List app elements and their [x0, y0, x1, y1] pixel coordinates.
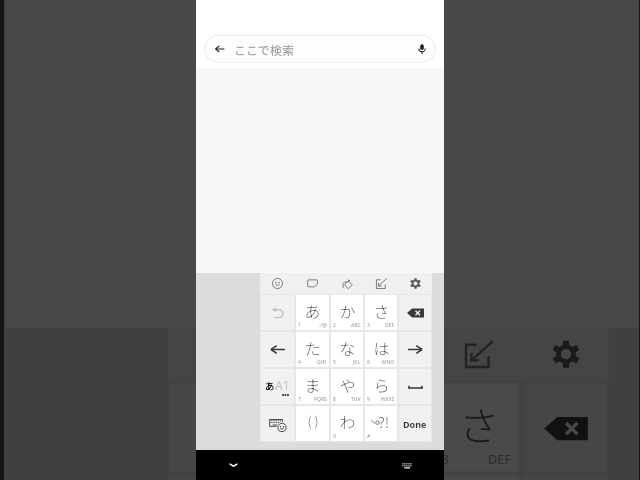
staticText: TUV	[351, 396, 361, 403]
staticText: A1	[275, 377, 290, 393]
staticText: な	[339, 336, 356, 359]
button[interactable]: ら	[365, 369, 397, 404]
staticText: 2	[333, 322, 336, 329]
button[interactable]: Hide keyboard	[196, 450, 270, 480]
staticText: JKL	[353, 359, 361, 366]
button[interactable]: Emoji keyboard	[261, 406, 294, 441]
button[interactable]: Themes	[347, 328, 434, 381]
button[interactable]: ( )	[296, 406, 329, 441]
staticText: 6	[367, 359, 370, 366]
staticText: ( )	[307, 411, 319, 430]
staticText: PQRS	[314, 396, 327, 403]
staticText: 1	[298, 322, 301, 329]
button[interactable]: や	[331, 369, 363, 404]
staticText: 3	[367, 322, 370, 329]
staticText: 3	[442, 451, 450, 469]
button[interactable]: は	[437, 476, 519, 480]
staticText: DEF	[385, 322, 395, 329]
button[interactable]: ?!	[365, 406, 397, 441]
button[interactable]: Move cursor left	[261, 332, 294, 367]
staticText: ABC	[351, 322, 361, 329]
staticText: ./@	[319, 322, 327, 329]
button[interactable]: は	[365, 332, 397, 367]
button[interactable]: さ	[365, 295, 397, 330]
button[interactable]: さ	[437, 383, 519, 471]
button[interactable]: あ	[296, 295, 329, 330]
button[interactable]: Done	[399, 406, 431, 441]
staticText: ま	[304, 373, 321, 396]
button[interactable]: Settings	[521, 328, 608, 381]
staticText: ABC	[401, 451, 426, 469]
button[interactable]: Switch input mode	[261, 369, 294, 404]
staticText: あ	[265, 379, 275, 393]
staticText: 8	[333, 396, 336, 403]
button[interactable]: Resize keyboard	[364, 273, 398, 294]
button[interactable]: Backspace	[524, 383, 606, 471]
staticText: か	[339, 299, 356, 322]
staticText: MNO	[382, 359, 395, 366]
button[interactable]: な	[331, 332, 363, 367]
button[interactable]: Emoji	[260, 273, 295, 294]
staticText: 9	[367, 396, 370, 403]
button[interactable]: ま	[296, 369, 329, 404]
button[interactable]: Resize keyboard	[434, 328, 521, 381]
button[interactable]: あ	[260, 383, 345, 471]
staticText: さ	[373, 299, 390, 322]
button[interactable]: ここで検索	[205, 36, 435, 62]
staticText: GHI	[317, 359, 327, 366]
staticText: は	[373, 336, 390, 359]
staticText: さ	[457, 393, 501, 451]
button[interactable]: Undo	[261, 295, 294, 330]
button[interactable]: Move cursor left	[170, 476, 255, 480]
staticText: WXYZ	[381, 396, 395, 403]
staticText: や	[339, 373, 356, 396]
staticText: ら	[373, 373, 390, 396]
staticText: わ	[339, 410, 356, 433]
button[interactable]: Themes	[330, 273, 364, 294]
staticText: 4	[298, 359, 301, 366]
staticText: ?!	[378, 411, 390, 433]
button[interactable]: Stickers	[295, 273, 330, 294]
button[interactable]: Change keyboard	[370, 450, 444, 480]
staticText: Done	[403, 418, 427, 430]
staticText: 5	[333, 359, 336, 366]
staticText: か	[370, 393, 414, 451]
button[interactable]: Space	[399, 369, 431, 404]
staticText: 0	[333, 433, 336, 440]
staticText: ここで検索	[234, 41, 409, 58]
button[interactable]: Backspace	[399, 295, 431, 330]
staticText: #	[367, 433, 371, 440]
staticText: 7	[298, 396, 301, 403]
button[interactable]: Settings	[398, 273, 432, 294]
button[interactable]: た	[296, 332, 329, 367]
staticText: DEF	[488, 451, 513, 469]
button[interactable]: Emoji	[168, 328, 257, 381]
button[interactable]: Stickers	[257, 328, 347, 381]
button[interactable]: Move cursor right	[399, 332, 431, 367]
button[interactable]: か	[331, 295, 363, 330]
staticText: た	[304, 336, 321, 359]
staticText: あ	[281, 393, 324, 451]
button[interactable]: わ	[331, 406, 363, 441]
button[interactable]: か	[350, 383, 432, 471]
staticText: あ	[304, 299, 321, 322]
button[interactable]: Undo	[170, 383, 255, 471]
